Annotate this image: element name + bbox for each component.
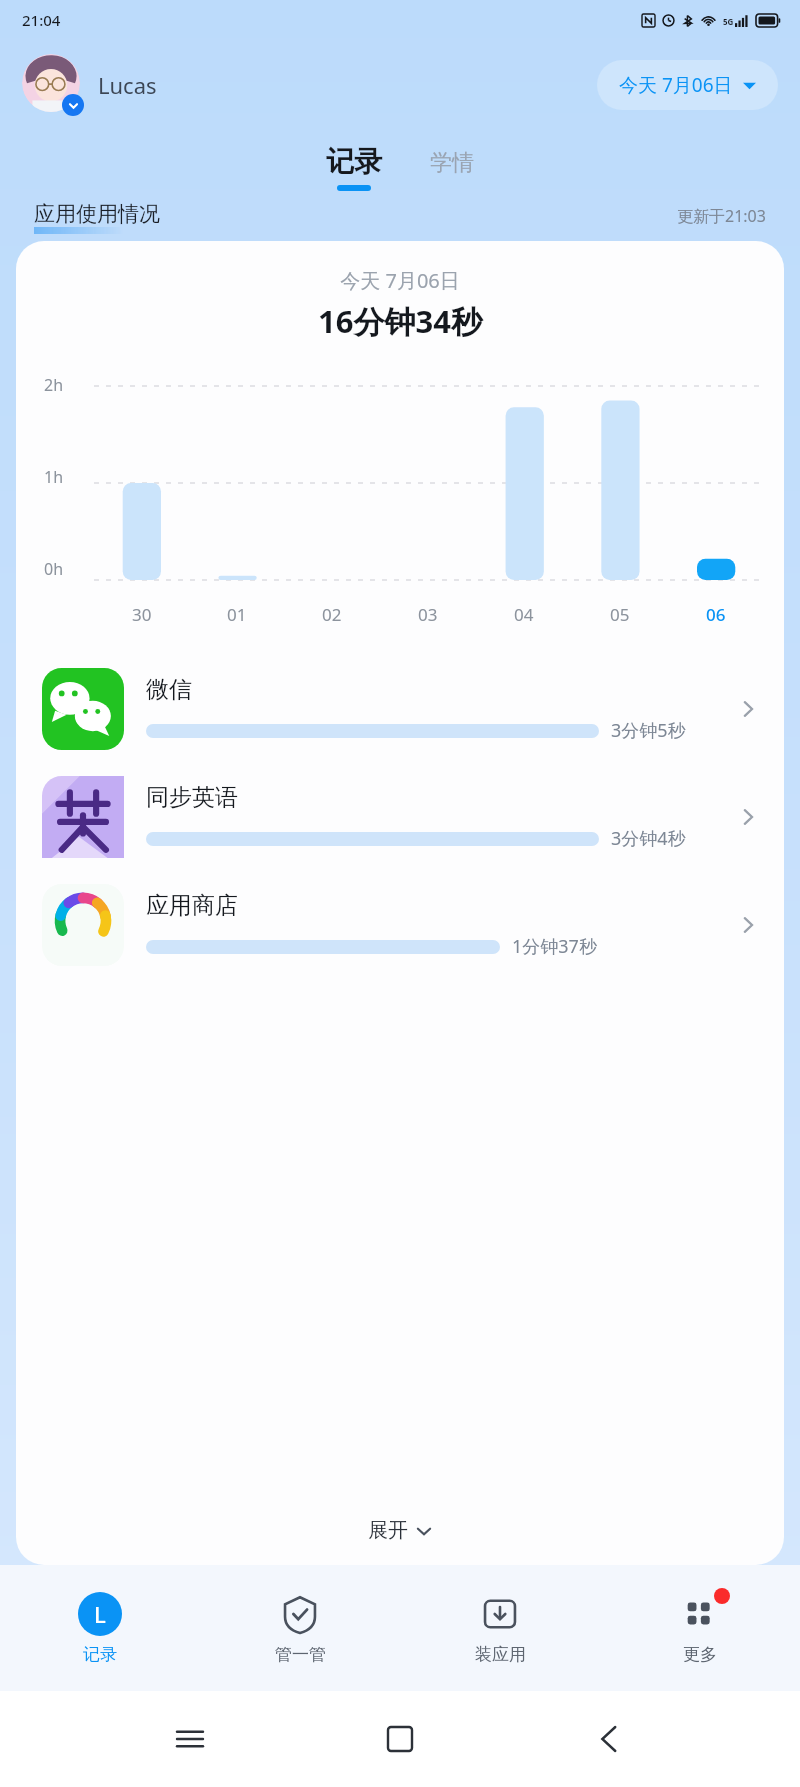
staticText: 02 <box>322 603 342 626</box>
staticText: 30 <box>132 603 152 626</box>
button[interactable]: Profile <box>22 54 84 116</box>
staticText: 展开 <box>368 1518 408 1543</box>
staticText: 03 <box>418 603 438 626</box>
button[interactable]: 管一管 <box>200 1565 400 1691</box>
button[interactable]: 装应用 <box>400 1565 600 1691</box>
other: Details <box>738 699 758 719</box>
staticText: 应用商店 <box>146 891 238 920</box>
button[interactable]: 应用商店 <box>16 884 784 966</box>
staticText: 1分钟37秒 <box>512 934 597 959</box>
staticText: 同步英语 <box>146 783 238 812</box>
button[interactable]: 今天 7月06日 <box>597 60 778 110</box>
staticText: 2h <box>44 374 64 396</box>
staticText: 更多 <box>683 1644 717 1665</box>
button[interactable]: 同步英语 <box>16 776 784 858</box>
button[interactable]: 更多 <box>600 1565 800 1691</box>
button[interactable]: 学情 <box>420 144 484 182</box>
staticText: 01 <box>227 603 247 626</box>
button[interactable]: L <box>0 1565 200 1691</box>
staticText: 更新于21:03 <box>677 205 766 227</box>
staticText: 1h <box>44 466 64 488</box>
staticText: 5G <box>723 16 734 27</box>
staticText: 微信 <box>146 675 192 704</box>
staticText: 装应用 <box>475 1644 526 1665</box>
staticText: 3分钟4秒 <box>611 826 686 851</box>
staticText: L <box>94 1599 106 1629</box>
button[interactable]: Home <box>380 1719 420 1759</box>
button[interactable]: 记录 <box>316 144 392 191</box>
staticText: 16分钟34秒 <box>16 300 784 342</box>
other: Details <box>738 915 758 935</box>
staticText: 管一管 <box>275 1644 326 1665</box>
staticText: 今天 7月06日 <box>16 267 784 294</box>
button[interactable]: 展开 <box>16 1518 784 1565</box>
staticText: 3分钟5秒 <box>611 718 686 743</box>
staticText: 今天 7月06日 <box>619 72 733 98</box>
button[interactable]: Back <box>590 1719 630 1759</box>
staticText: Lucas <box>98 70 157 100</box>
staticText: 05 <box>610 603 630 626</box>
staticText: 记录 <box>326 144 382 179</box>
button[interactable]: Menu <box>170 1719 210 1759</box>
staticText: 学情 <box>430 149 474 177</box>
staticText: 记录 <box>83 1644 117 1665</box>
staticText: 0h <box>44 558 64 580</box>
staticText: 应用使用情况 <box>34 201 160 227</box>
staticText: 21:04 <box>22 10 61 30</box>
staticText: 06 <box>706 603 726 626</box>
button[interactable]: 微信 <box>16 668 784 750</box>
staticText: 04 <box>514 603 534 626</box>
other: Details <box>738 807 758 827</box>
